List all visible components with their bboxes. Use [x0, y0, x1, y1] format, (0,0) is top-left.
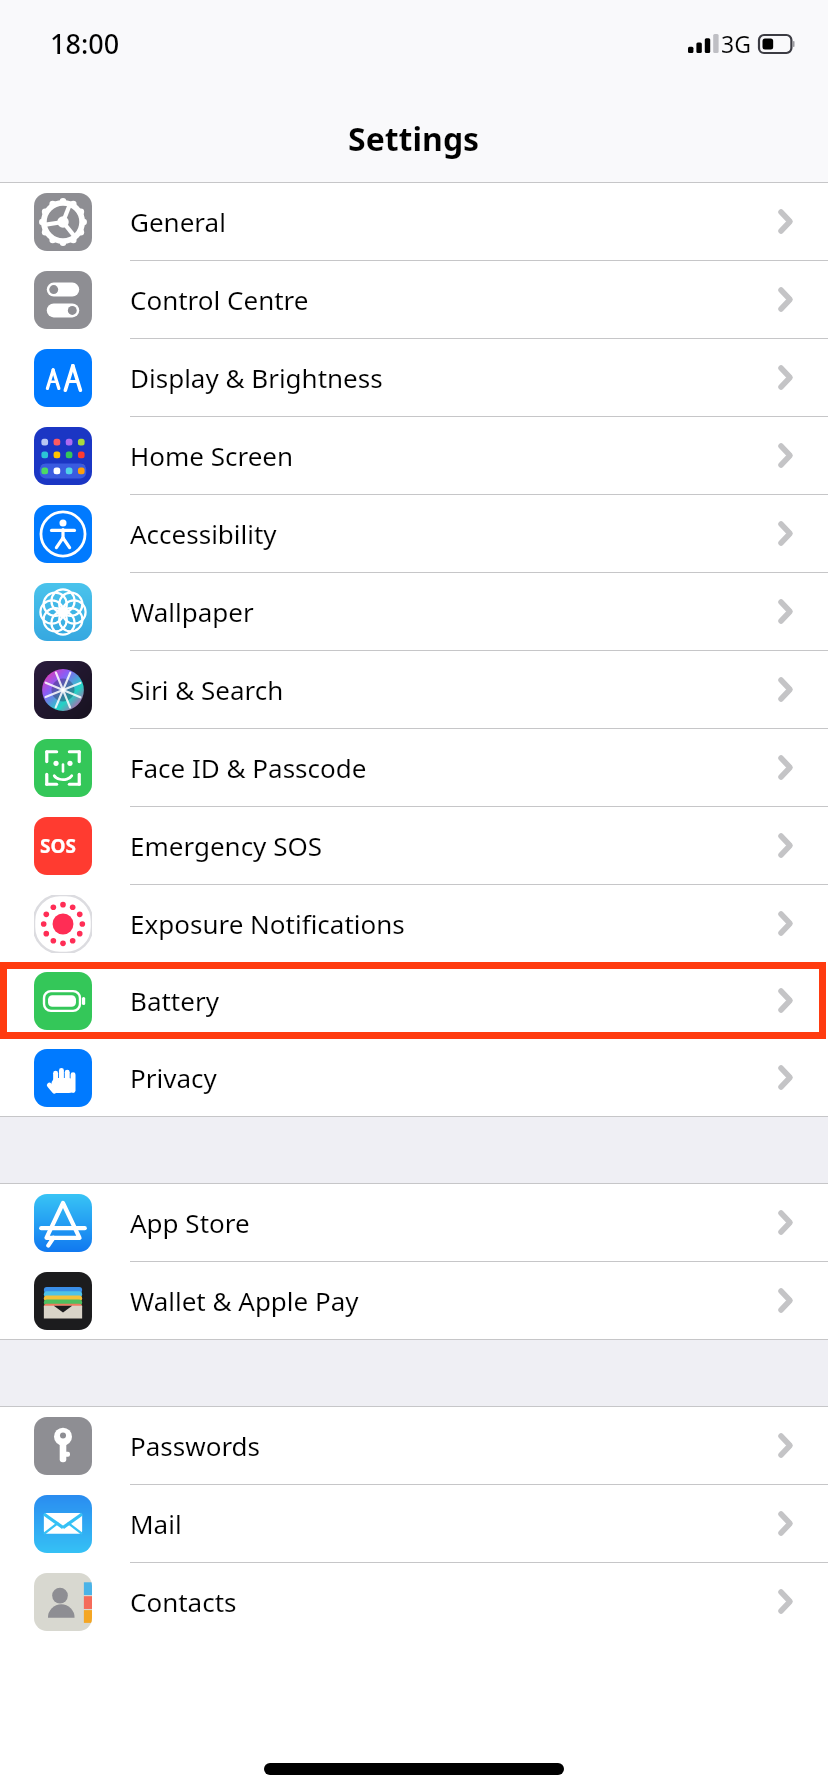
- staticText: Emergency SOS: [130, 828, 322, 863]
- button[interactable]: Wallpaper: [0, 573, 828, 650]
- button[interactable]: Control Centre: [0, 261, 828, 338]
- staticText: Home Screen: [130, 438, 294, 473]
- button[interactable]: Home Screen: [0, 417, 828, 494]
- staticText: Siri & Search: [130, 672, 284, 707]
- staticText: Settings: [348, 117, 480, 161]
- staticText: Mail: [130, 1506, 182, 1541]
- button[interactable]: Siri & Search: [0, 651, 828, 728]
- button[interactable]: Passwords: [0, 1407, 828, 1484]
- button[interactable]: Contacts: [0, 1563, 828, 1640]
- staticText: Accessibility: [130, 516, 277, 551]
- staticText: Battery: [130, 983, 219, 1018]
- staticText: General: [130, 204, 226, 239]
- staticText: App Store: [130, 1205, 250, 1240]
- staticText: Privacy: [130, 1060, 217, 1095]
- button[interactable]: Mail: [0, 1485, 828, 1562]
- button[interactable]: Accessibility: [0, 495, 828, 572]
- staticText: Face ID & Passcode: [130, 750, 367, 785]
- button[interactable]: Face ID & Passcode: [0, 729, 828, 806]
- staticText: Exposure Notifications: [130, 906, 405, 941]
- button[interactable]: Display & Brightness: [0, 339, 828, 416]
- staticText: Passwords: [130, 1428, 261, 1463]
- staticText: Wallet & Apple Pay: [130, 1283, 359, 1318]
- button[interactable]: General: [0, 183, 828, 260]
- button[interactable]: Battery: [0, 962, 828, 1039]
- staticText: Control Centre: [130, 282, 309, 317]
- staticText: 18:00: [50, 25, 120, 62]
- button[interactable]: App Store: [0, 1184, 828, 1261]
- button[interactable]: Emergency SOS: [0, 807, 828, 884]
- staticText: SOS: [40, 833, 76, 859]
- staticText: Contacts: [130, 1584, 237, 1619]
- staticText: Display & Brightness: [130, 360, 383, 395]
- button[interactable]: Exposure Notifications: [0, 885, 828, 962]
- button[interactable]: Wallet & Apple Pay: [0, 1262, 828, 1339]
- staticText: 3G: [721, 28, 751, 59]
- staticText: Wallpaper: [130, 594, 254, 629]
- button[interactable]: Privacy: [0, 1039, 828, 1116]
